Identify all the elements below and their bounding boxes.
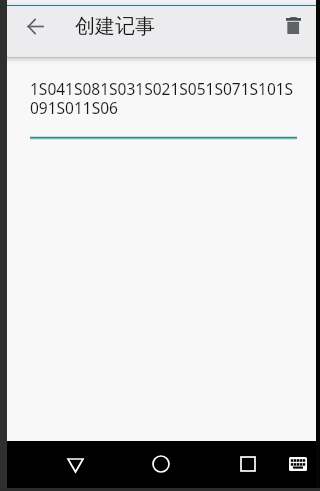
button[interactable]: Back — [47, 440, 103, 490]
button[interactable]: Back — [15, 6, 55, 46]
button[interactable]: 1S041S081S031S021S051S071S101S091S011S06 — [7, 64, 316, 140]
button[interactable]: Home — [133, 439, 189, 489]
button[interactable]: Delete — [273, 5, 313, 45]
staticText: 创建记事 — [75, 14, 155, 39]
button[interactable]: Recents — [220, 439, 276, 489]
button[interactable]: Keyboard — [270, 439, 320, 489]
staticText: 1S041S081S031S021S051S071S101S091S011S06 — [30, 78, 297, 118]
